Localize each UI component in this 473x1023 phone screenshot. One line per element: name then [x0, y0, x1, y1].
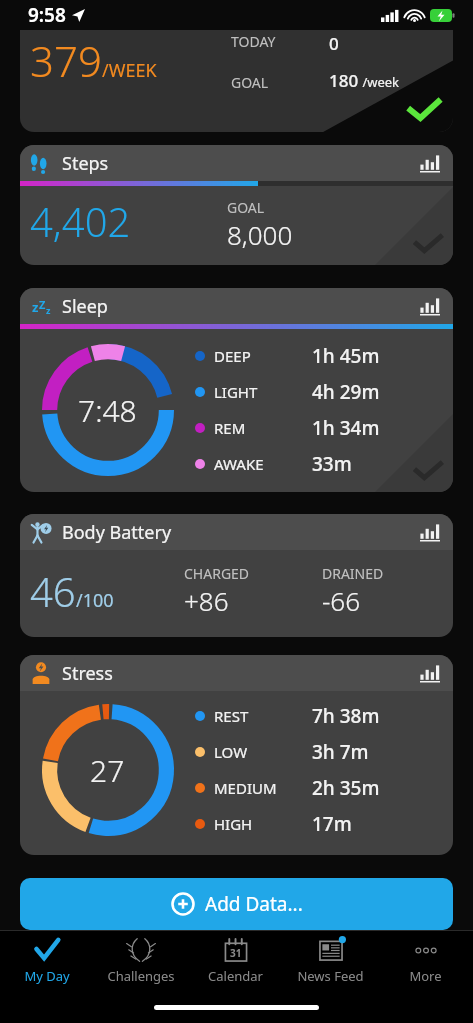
staticText: 3h 7m	[312, 739, 369, 765]
staticText: 2h 35m	[312, 775, 380, 801]
staticText: Calendar	[208, 967, 263, 985]
staticText: CHARGED	[184, 564, 250, 583]
staticText: 1h 34m	[312, 415, 380, 441]
staticText: REM	[214, 418, 312, 438]
staticText: Body Battery	[62, 520, 417, 545]
button[interactable]: z	[20, 288, 453, 492]
staticText: More	[409, 967, 442, 985]
staticText: GOAL	[231, 73, 329, 92]
staticText: My Day	[24, 967, 70, 985]
staticText: 0	[329, 32, 339, 55]
staticText: DRAINED	[322, 564, 384, 583]
staticText: 27	[90, 750, 125, 791]
staticText: z	[32, 298, 39, 316]
button[interactable]: News Feed	[283, 937, 378, 997]
button[interactable]: Steps	[20, 145, 453, 265]
button[interactable]: Stress	[20, 655, 453, 855]
button[interactable]: Body Battery chart	[417, 519, 443, 545]
staticText: Stress	[62, 661, 417, 686]
staticText: 8,000	[227, 217, 293, 252]
staticText: 9:58	[28, 2, 66, 28]
staticText: 4h 29m	[312, 379, 380, 405]
staticText: HIGH	[214, 814, 312, 834]
button[interactable]: My Day	[0, 937, 94, 997]
button[interactable]: Steps chart	[417, 150, 443, 176]
button[interactable]: More	[378, 937, 473, 997]
button[interactable]: Challenges	[94, 937, 188, 997]
staticText: z	[46, 304, 51, 316]
staticText: MEDIUM	[214, 778, 312, 798]
button[interactable]: Stress chart	[417, 660, 443, 686]
button[interactable]: Sleep chart	[417, 293, 443, 319]
staticText: LOW	[214, 742, 312, 762]
staticText: LIGHT	[214, 382, 312, 402]
staticText: /week	[359, 73, 400, 91]
button[interactable]: Body Battery	[20, 514, 453, 637]
staticText: Sleep	[62, 294, 417, 319]
staticText: 31	[230, 946, 242, 960]
staticText: /100	[76, 588, 114, 613]
staticText: 17m	[312, 811, 352, 837]
staticText: 7:48	[78, 390, 137, 431]
staticText: DEEP	[214, 346, 312, 366]
staticText: -66	[322, 583, 361, 618]
staticText: 4,402	[30, 194, 227, 248]
staticText: REST	[214, 706, 312, 726]
staticText: Challenges	[107, 967, 175, 985]
staticText: +86	[184, 583, 229, 618]
staticText: AWAKE	[214, 454, 312, 474]
staticText: Z	[39, 297, 46, 312]
staticText: 379	[30, 32, 102, 89]
staticText: 33m	[312, 451, 352, 477]
staticText: News Feed	[297, 967, 364, 985]
staticText: Steps	[62, 151, 417, 176]
staticText: 7h 38m	[312, 703, 380, 729]
staticText: GOAL	[227, 198, 265, 217]
staticText: TODAY	[231, 32, 329, 51]
staticText: 46	[30, 564, 76, 618]
button[interactable]: 31	[188, 937, 283, 997]
button[interactable]: 379	[20, 30, 453, 132]
button[interactable]: Add Data...	[20, 878, 453, 930]
staticText: /WEEK	[102, 58, 157, 83]
staticText: 180	[329, 69, 359, 92]
staticText: 1h 45m	[312, 343, 380, 369]
staticText: Add Data...	[205, 891, 303, 917]
